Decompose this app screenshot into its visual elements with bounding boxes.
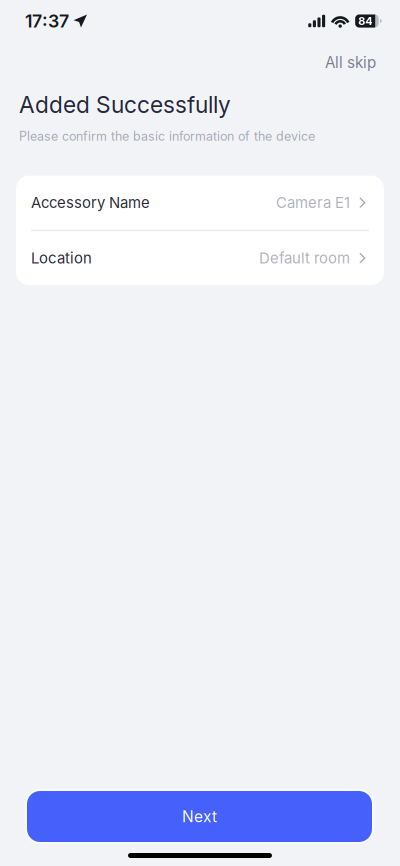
- button[interactable]: All skip: [301, 46, 400, 79]
- button[interactable]: Location: [16, 231, 384, 285]
- staticText: Added Successfully: [19, 91, 231, 119]
- staticText: Camera E1: [276, 194, 350, 212]
- staticText: Default room: [259, 249, 350, 267]
- staticText: 17:37: [25, 10, 69, 32]
- staticText: All skip: [325, 53, 376, 72]
- staticText: Please confirm the basic information of …: [19, 129, 315, 144]
- staticText: Accessory Name: [31, 194, 150, 212]
- button[interactable]: Next: [27, 791, 372, 842]
- staticText: Next: [182, 807, 217, 826]
- button[interactable]: Accessory Name: [16, 176, 384, 230]
- staticText: 84: [358, 14, 372, 28]
- staticText: Location: [31, 249, 92, 267]
